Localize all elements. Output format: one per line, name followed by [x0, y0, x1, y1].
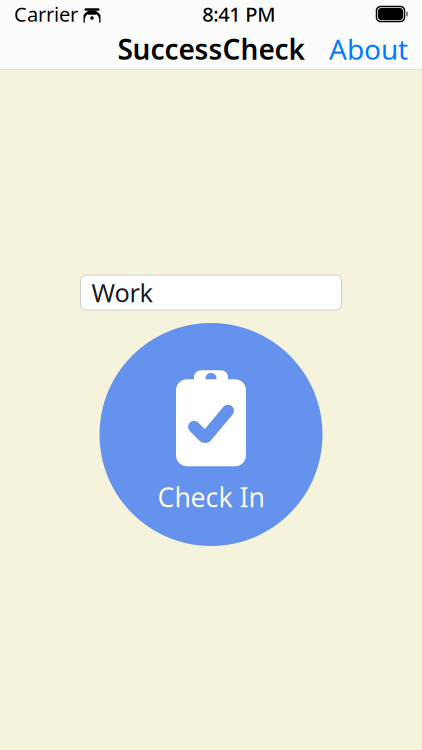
staticText: About	[329, 30, 408, 68]
button[interactable]: About	[315, 22, 422, 76]
staticText: Work	[91, 276, 153, 309]
staticText: SuccessCheck	[117, 30, 304, 68]
staticText: Carrier	[14, 1, 78, 27]
staticText: 8:41 PM	[202, 1, 275, 27]
staticText: Check In	[157, 479, 264, 515]
button[interactable]: Work	[80, 275, 341, 310]
button[interactable]: Check In	[99, 323, 322, 546]
